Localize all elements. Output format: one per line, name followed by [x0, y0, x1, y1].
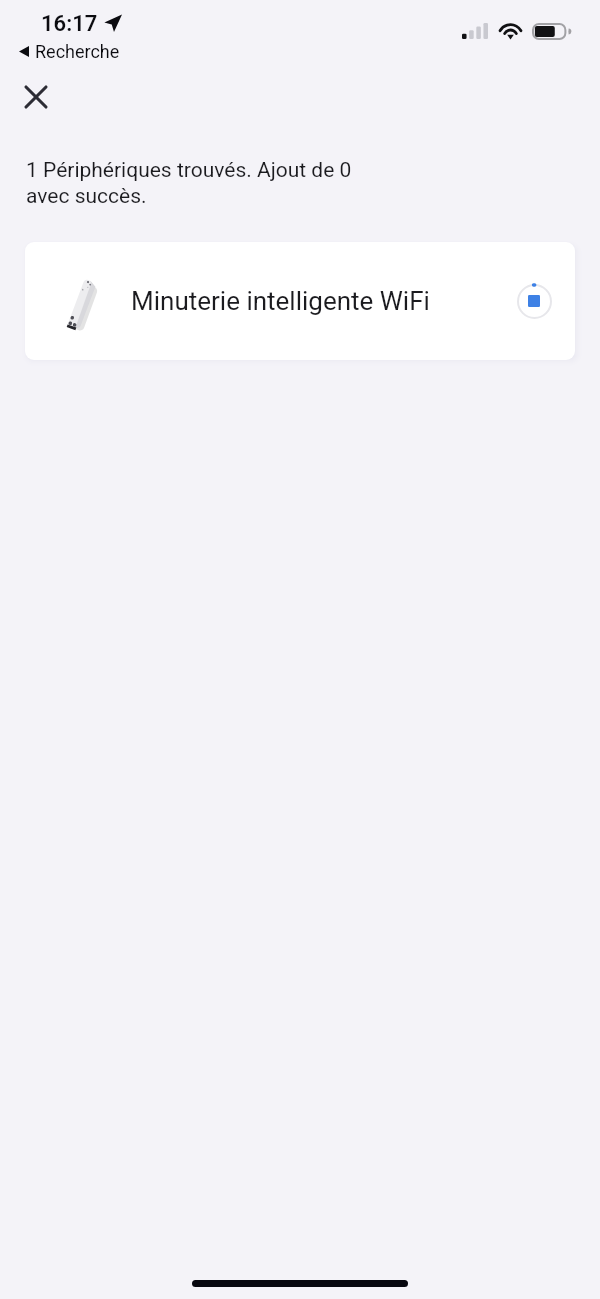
staticText: 1 Périphériques trouvés. Ajout de 0 avec…	[26, 158, 352, 208]
staticText: Minuterie intelligente WiFi	[131, 286, 430, 316]
staticText: 16:17	[41, 11, 98, 37]
staticText: Recherche	[35, 41, 120, 62]
button[interactable]: Recherche	[19, 40, 120, 62]
button[interactable]: Stop scanning	[512, 279, 556, 323]
button[interactable]: Close	[10, 71, 62, 123]
button[interactable]: Minuterie intelligente WiFi	[25, 242, 575, 360]
